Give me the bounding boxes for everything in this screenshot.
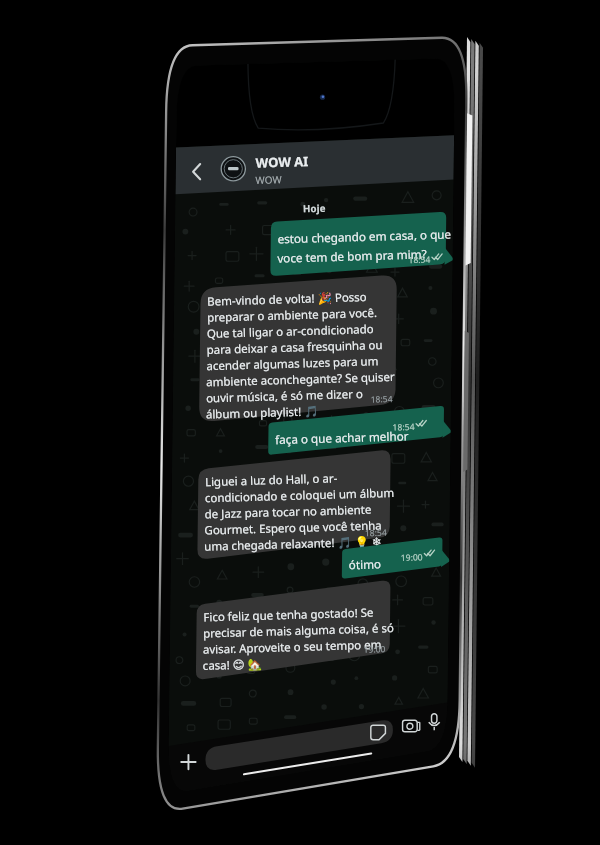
button[interactable]: WOW AI chat conversation	[0, 0, 600, 845]
